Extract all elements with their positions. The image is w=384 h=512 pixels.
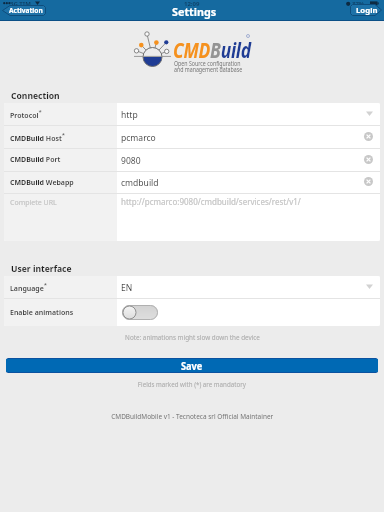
staticText: http://pcmarco:9080/cmdbuild/services/re… <box>121 196 301 207</box>
staticText: Open Source configuration and management… <box>174 59 243 74</box>
button[interactable]: Activation <box>2 5 46 16</box>
staticText: CMDBuildMobile v1 - Tecnoteca srl Offici… <box>111 411 274 421</box>
button[interactable]: Clear field <box>364 177 373 186</box>
other: Open dropdown <box>366 284 373 289</box>
button[interactable]: Login <box>350 4 382 16</box>
button[interactable]: Clear field <box>364 132 373 141</box>
staticText: CMDBuild Port <box>10 155 61 165</box>
staticText: CMDBuild Host* <box>10 131 66 143</box>
staticText: http <box>121 108 138 121</box>
staticText: Note: animations might slow down the dev… <box>125 333 260 342</box>
staticText: 12:09 <box>184 0 200 8</box>
button[interactable]: Save <box>6 358 378 373</box>
other: Open dropdown <box>366 111 373 116</box>
staticText: Language* <box>10 281 48 293</box>
staticText: CMDBuild Webapp <box>10 178 74 188</box>
staticText: User interface <box>11 262 72 274</box>
staticText: EN <box>121 281 133 294</box>
staticText: 3G TIM <box>10 0 31 8</box>
staticText: 37% <box>352 0 365 8</box>
button[interactable]: Clear field <box>364 155 373 164</box>
staticText: Settings <box>172 4 217 19</box>
staticText: Enable animations <box>10 308 74 318</box>
staticText: CMDBuild <box>173 36 251 65</box>
staticText: Protocol* <box>10 108 42 120</box>
staticText: Activation <box>9 6 43 15</box>
staticText: 9080 <box>121 154 141 167</box>
staticText: Login <box>356 5 378 16</box>
button[interactable]: Enable animations toggle <box>122 305 158 320</box>
staticText: Complete URL <box>10 198 57 208</box>
staticText: cmdbuild <box>121 176 159 189</box>
staticText: Fields marked with (*) are mandatory <box>138 380 246 389</box>
staticText: Save <box>181 359 203 373</box>
staticText: Connection <box>11 89 60 101</box>
staticText: pcmarco <box>121 131 156 144</box>
